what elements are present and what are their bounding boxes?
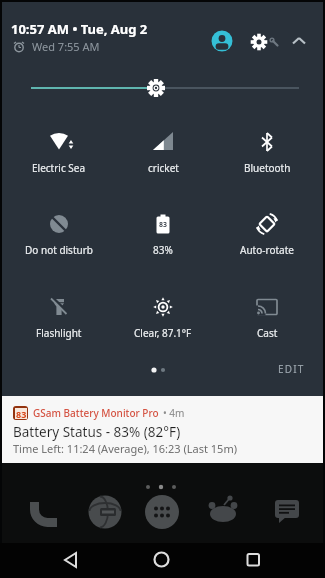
button[interactable]: Clear, 87.1°F: [111, 293, 215, 340]
staticText: 83%: [153, 243, 173, 257]
staticText: cricket: [148, 161, 179, 175]
staticText: GSam Battery Monitor Pro: [33, 406, 159, 420]
staticText: Flashlight: [36, 326, 82, 340]
staticText: 83: [159, 220, 168, 230]
staticText: Do not disturb: [25, 243, 93, 257]
button[interactable]: Electric Sea: [6, 128, 111, 175]
staticText: 83: [16, 408, 27, 419]
staticText: Cast: [257, 326, 278, 340]
staticText: Wed 7:55 AM: [32, 39, 100, 54]
button[interactable]: [86, 493, 124, 531]
staticText: Electric Sea: [32, 161, 86, 175]
button[interactable]: cricket: [111, 128, 215, 175]
button[interactable]: [268, 491, 306, 529]
button[interactable]: [239, 545, 267, 573]
button[interactable]: [247, 30, 283, 54]
button[interactable]: Flashlight: [6, 293, 111, 340]
button[interactable]: [211, 30, 233, 52]
button[interactable]: [54, 545, 82, 573]
button[interactable]: Do not disturb: [6, 210, 111, 257]
staticText: Clear, 87.1°F: [134, 326, 192, 340]
button[interactable]: [147, 545, 175, 573]
staticText: EDIT: [278, 362, 305, 376]
staticText: 10:57 AM • Tue, Aug 2: [11, 20, 148, 38]
staticText: Battery Status - 83% (82°F): [13, 423, 181, 441]
staticText: Auto-rotate: [240, 243, 294, 257]
button[interactable]: Bluetooth: [215, 128, 319, 175]
button[interactable]: EDIT: [268, 356, 314, 382]
button[interactable]: Cast: [215, 293, 319, 340]
staticText: Bluetooth: [244, 161, 291, 175]
button[interactable]: 83: [111, 210, 215, 257]
button[interactable]: [289, 32, 309, 50]
staticText: Time Left: 11:24 (Average), 16:23 (Last …: [13, 441, 237, 456]
staticText: • 4m: [163, 406, 185, 420]
button[interactable]: [143, 493, 181, 531]
button[interactable]: [203, 491, 243, 531]
button[interactable]: Auto-rotate: [215, 210, 319, 257]
button[interactable]: 83: [2, 396, 323, 463]
button[interactable]: [24, 493, 60, 529]
